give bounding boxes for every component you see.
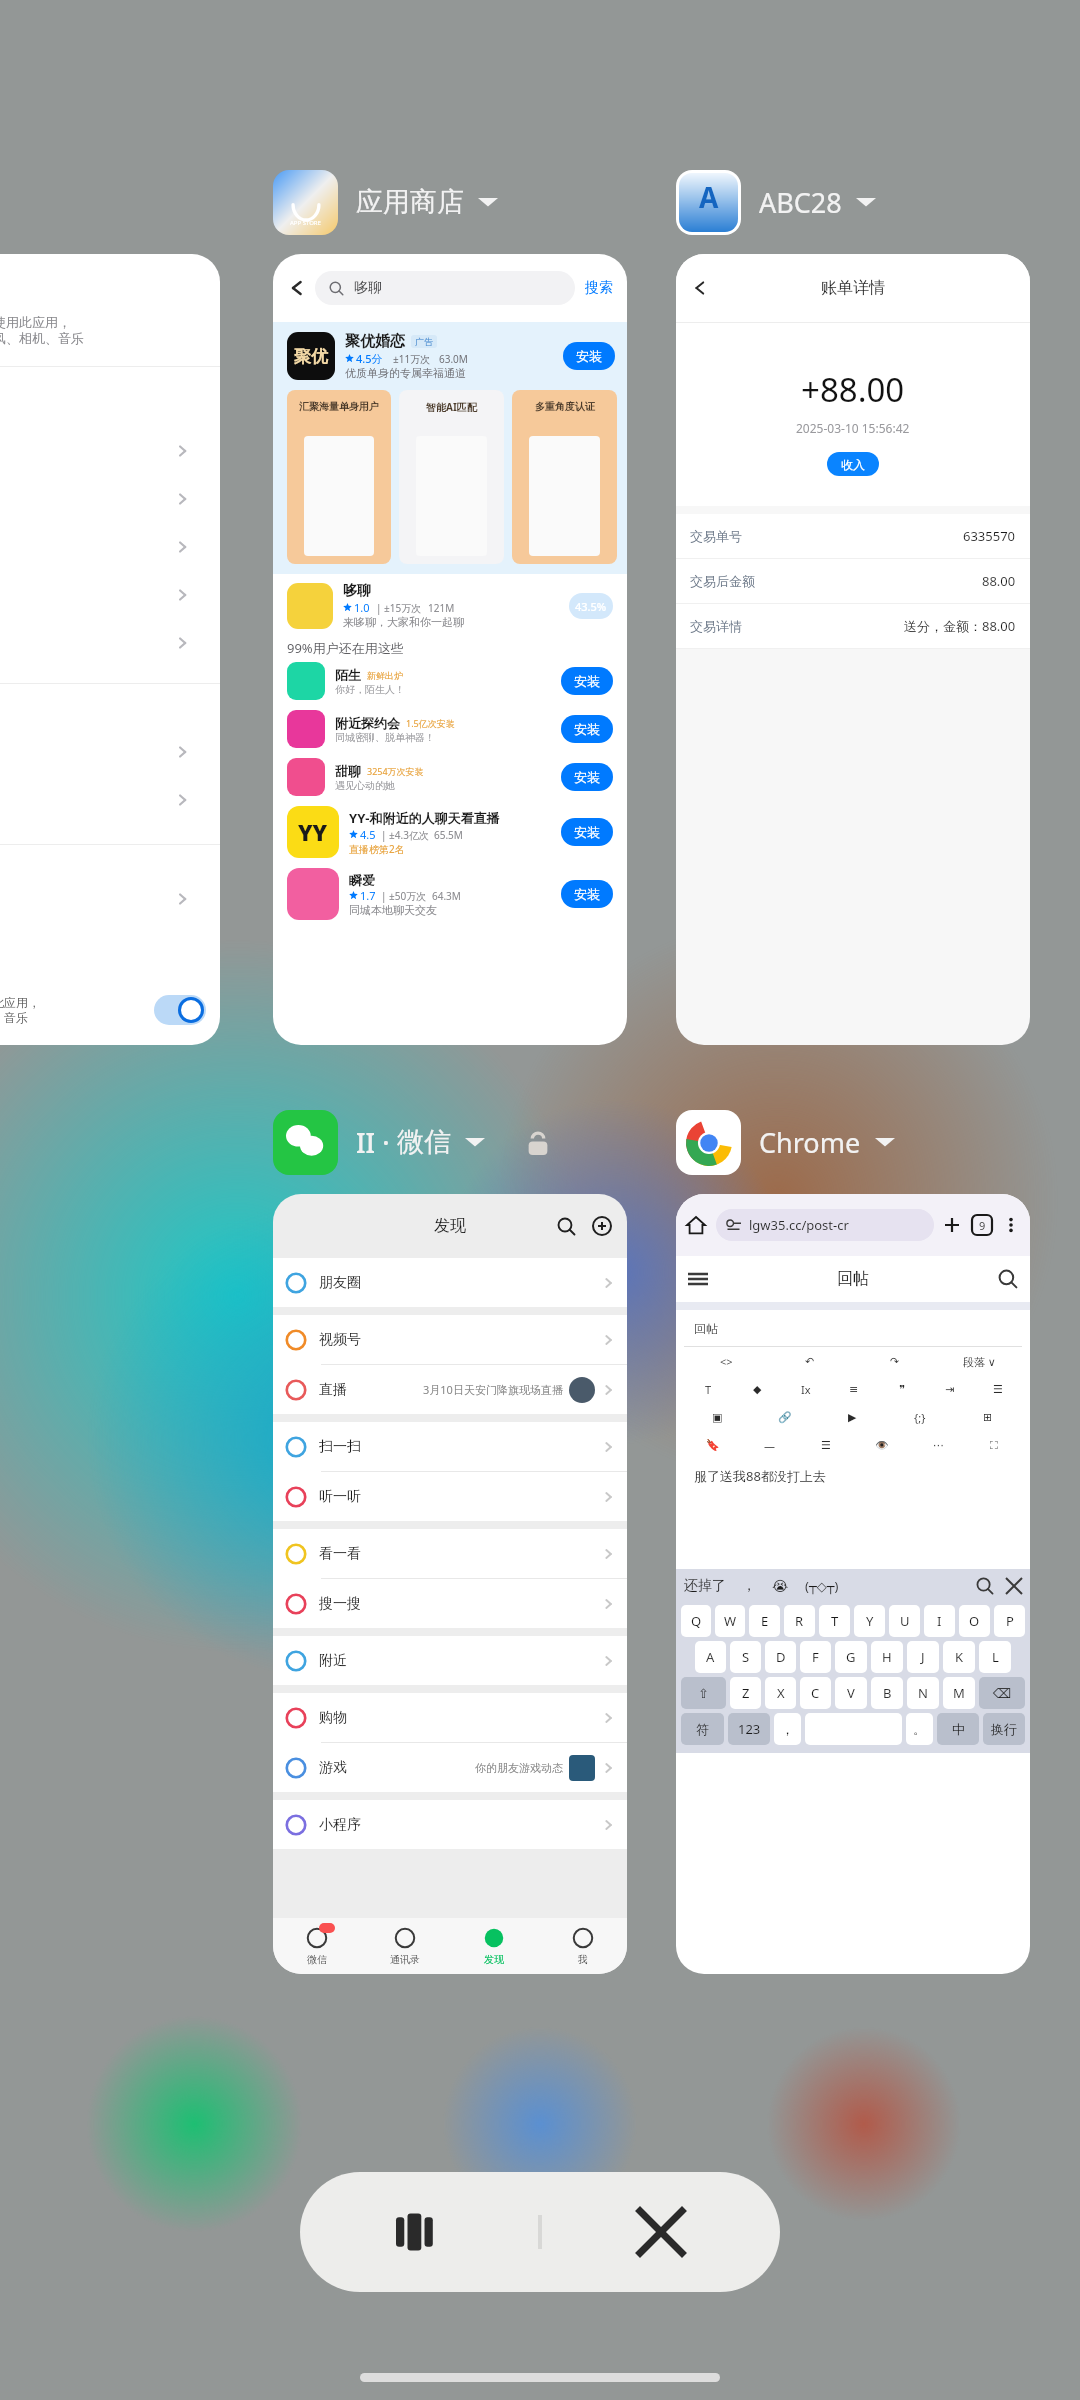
button[interactable]: 购物 xyxy=(285,1693,615,1742)
button[interactable]: ▶ xyxy=(818,1403,886,1431)
button[interactable]: 微信 xyxy=(273,1918,361,1974)
button[interactable]: New tab xyxy=(942,1215,962,1235)
button[interactable]: II · xyxy=(273,1108,551,1176)
button[interactable]: ▣ xyxy=(684,1403,751,1431)
button[interactable]: Z xyxy=(730,1677,761,1709)
button[interactable]: ⌫ xyxy=(979,1677,1025,1709)
button[interactable] xyxy=(0,475,220,523)
button[interactable]: 小程序 xyxy=(285,1800,615,1849)
button[interactable]: 瞬爱 xyxy=(287,868,613,920)
button[interactable]: Close all xyxy=(542,2172,780,2292)
button[interactable]: ⛶ xyxy=(966,1431,1022,1459)
button[interactable]: YY xyxy=(287,806,613,858)
button[interactable]: M xyxy=(943,1677,975,1709)
button[interactable]: P xyxy=(994,1605,1025,1637)
button[interactable]: 。 xyxy=(906,1713,933,1745)
button[interactable]: More options xyxy=(1002,1216,1020,1234)
button[interactable]: 交易单号 xyxy=(690,514,1016,558)
button[interactable]: ☰ xyxy=(974,1375,1022,1403)
button[interactable]: 哆聊 xyxy=(287,582,613,629)
button[interactable]: F xyxy=(800,1641,831,1673)
button[interactable] xyxy=(0,875,220,923)
button[interactable]: — xyxy=(741,1431,798,1459)
button[interactable]: Tabs xyxy=(972,1215,992,1235)
button[interactable]: B xyxy=(871,1677,903,1709)
button[interactable]: 通讯录 xyxy=(361,1918,449,1974)
button[interactable]: 符 xyxy=(681,1713,724,1745)
button[interactable]: Y xyxy=(854,1605,885,1637)
button[interactable]: 听一听 xyxy=(285,1472,615,1521)
button[interactable]: E xyxy=(749,1605,780,1637)
button[interactable]: 发现 xyxy=(449,1918,538,1974)
button[interactable]: 交易后金额 xyxy=(690,559,1016,603)
button[interactable]: 👁 xyxy=(854,1431,910,1459)
button[interactable]: 安装 xyxy=(561,818,613,846)
button[interactable]: 搜一搜 xyxy=(285,1579,615,1628)
button[interactable]: O xyxy=(959,1605,990,1637)
button[interactable]: A xyxy=(676,168,876,236)
button[interactable]: A xyxy=(695,1641,726,1673)
button[interactable]: K xyxy=(943,1641,975,1673)
button[interactable]: 发现 xyxy=(273,1194,627,1974)
button[interactable]: J xyxy=(907,1641,939,1673)
button[interactable]: 43.5% xyxy=(569,593,613,619)
button[interactable]: 附近 xyxy=(285,1636,615,1685)
button[interactable]: 陌生 xyxy=(287,662,613,700)
button[interactable]: APP STORE xyxy=(273,168,498,236)
button[interactable]: 安装 xyxy=(563,342,615,370)
button[interactable] xyxy=(0,427,220,475)
button[interactable]: ⇧ xyxy=(681,1677,726,1709)
button[interactable]: 视频号 xyxy=(285,1315,615,1364)
button[interactable]: 安装 xyxy=(561,763,613,791)
button[interactable]: ↶ xyxy=(768,1347,852,1375)
button[interactable]: 搜索 xyxy=(585,279,613,297)
button[interactable]: L xyxy=(979,1641,1011,1673)
button[interactable]: T xyxy=(819,1605,850,1637)
button[interactable]: Back xyxy=(273,254,627,1045)
button[interactable]: Search xyxy=(998,1269,1018,1289)
button[interactable]: 123 xyxy=(728,1713,770,1745)
button[interactable]: 朋友圈 xyxy=(285,1258,615,1307)
button[interactable]: 安装 xyxy=(561,667,613,695)
button[interactable] xyxy=(0,523,220,571)
button[interactable]: 中 xyxy=(937,1713,979,1745)
button[interactable]: Add xyxy=(589,1213,615,1239)
button[interactable]: 安装 xyxy=(561,715,613,743)
button[interactable] xyxy=(0,571,220,619)
button[interactable]: {;} xyxy=(886,1403,954,1431)
button[interactable]: W xyxy=(715,1605,745,1637)
button[interactable]: V xyxy=(835,1677,867,1709)
button[interactable]: S xyxy=(730,1641,761,1673)
button[interactable]: Home xyxy=(676,1194,1030,1974)
button[interactable]: ☰ xyxy=(798,1431,854,1459)
button[interactable]: Split screen xyxy=(300,2172,538,2292)
button[interactable]: X xyxy=(765,1677,796,1709)
button[interactable]: Menu xyxy=(688,1269,708,1289)
button[interactable]: ⇥ xyxy=(926,1375,974,1403)
button[interactable]: 游戏 xyxy=(285,1743,615,1792)
button[interactable]: N xyxy=(907,1677,939,1709)
button[interactable]: ⊞ xyxy=(954,1403,1022,1431)
button[interactable]: D xyxy=(765,1641,796,1673)
button[interactable] xyxy=(0,728,220,776)
button[interactable]: R xyxy=(784,1605,815,1637)
button[interactable]: <> xyxy=(684,1347,768,1375)
button[interactable]: 🔖 xyxy=(684,1431,741,1459)
button[interactable]: 收入 xyxy=(827,452,879,476)
button[interactable]: T xyxy=(684,1375,733,1403)
button[interactable]: 安装 xyxy=(561,880,613,908)
button[interactable]: H xyxy=(871,1641,903,1673)
button[interactable]: U xyxy=(889,1605,920,1637)
button[interactable]: Back xyxy=(676,254,1030,1045)
button[interactable]: C xyxy=(800,1677,831,1709)
button[interactable]: lgw35.cc/post-cr xyxy=(726,1209,934,1241)
button[interactable]: 扫一扫 xyxy=(285,1422,615,1471)
button[interactable]: 换行 xyxy=(983,1713,1025,1745)
button[interactable]: 看一看 xyxy=(285,1529,615,1578)
button[interactable]: 附近探约会 xyxy=(287,710,613,748)
button[interactable]: 交易详情 xyxy=(690,604,1016,648)
button[interactable]: Q xyxy=(681,1605,711,1637)
button[interactable]: ， xyxy=(774,1713,801,1745)
button[interactable]: 如果您连续几个月未使用此应用， xyxy=(0,254,220,1045)
